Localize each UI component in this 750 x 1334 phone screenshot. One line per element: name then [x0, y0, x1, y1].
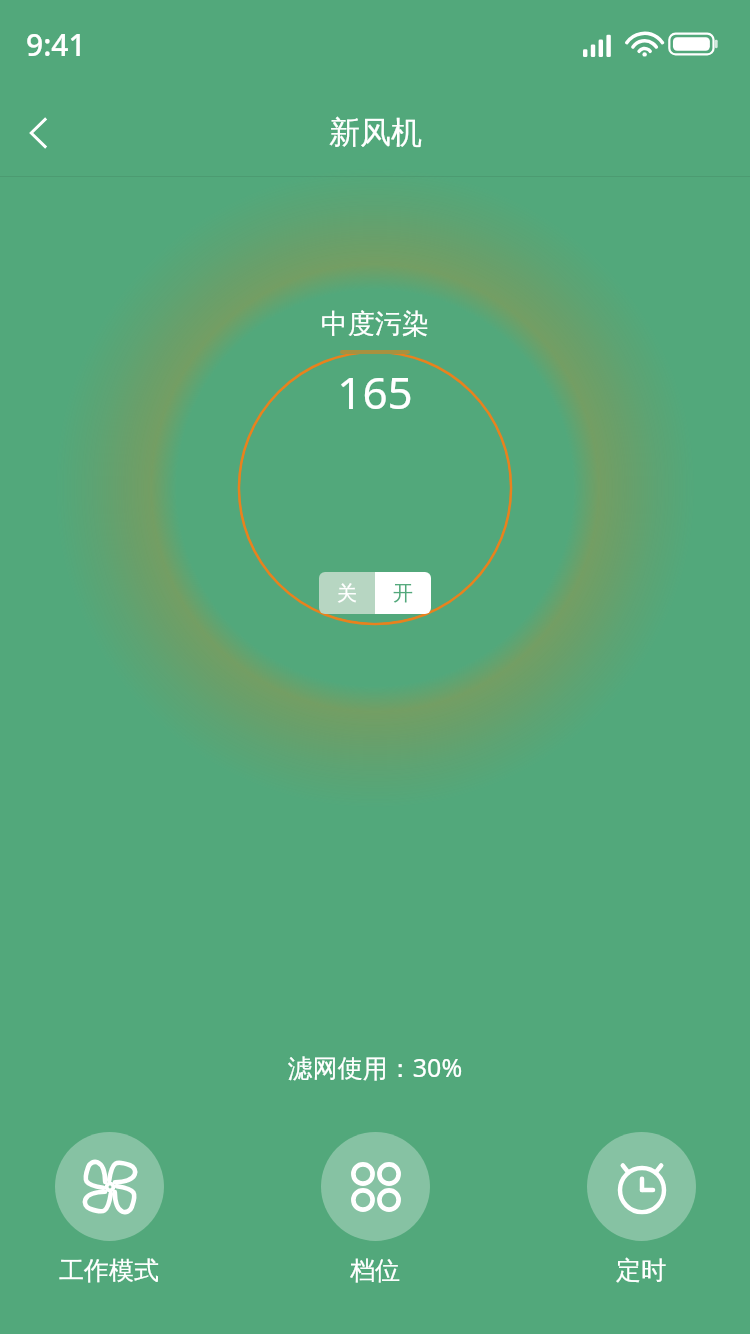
staticText: 档位 — [350, 1255, 400, 1286]
staticText: 工作模式 — [59, 1255, 159, 1286]
button[interactable]: Timer — [566, 1132, 716, 1286]
staticText: 中度污染 — [321, 307, 429, 341]
button[interactable]: Work mode — [34, 1132, 184, 1286]
button[interactable]: 关 — [319, 572, 375, 614]
staticText: 9:41 — [26, 24, 86, 65]
staticText: 定时 — [616, 1255, 666, 1286]
button[interactable]: Back — [0, 94, 78, 172]
staticText: 滤网使用：30% — [0, 1050, 750, 1084]
button[interactable]: 开 — [375, 572, 431, 614]
staticText: 165 — [337, 362, 413, 422]
staticText: 关 — [337, 581, 357, 606]
staticText: 新风机 — [329, 113, 422, 152]
button[interactable]: Fan speed — [300, 1132, 450, 1286]
staticText: 开 — [393, 581, 413, 606]
